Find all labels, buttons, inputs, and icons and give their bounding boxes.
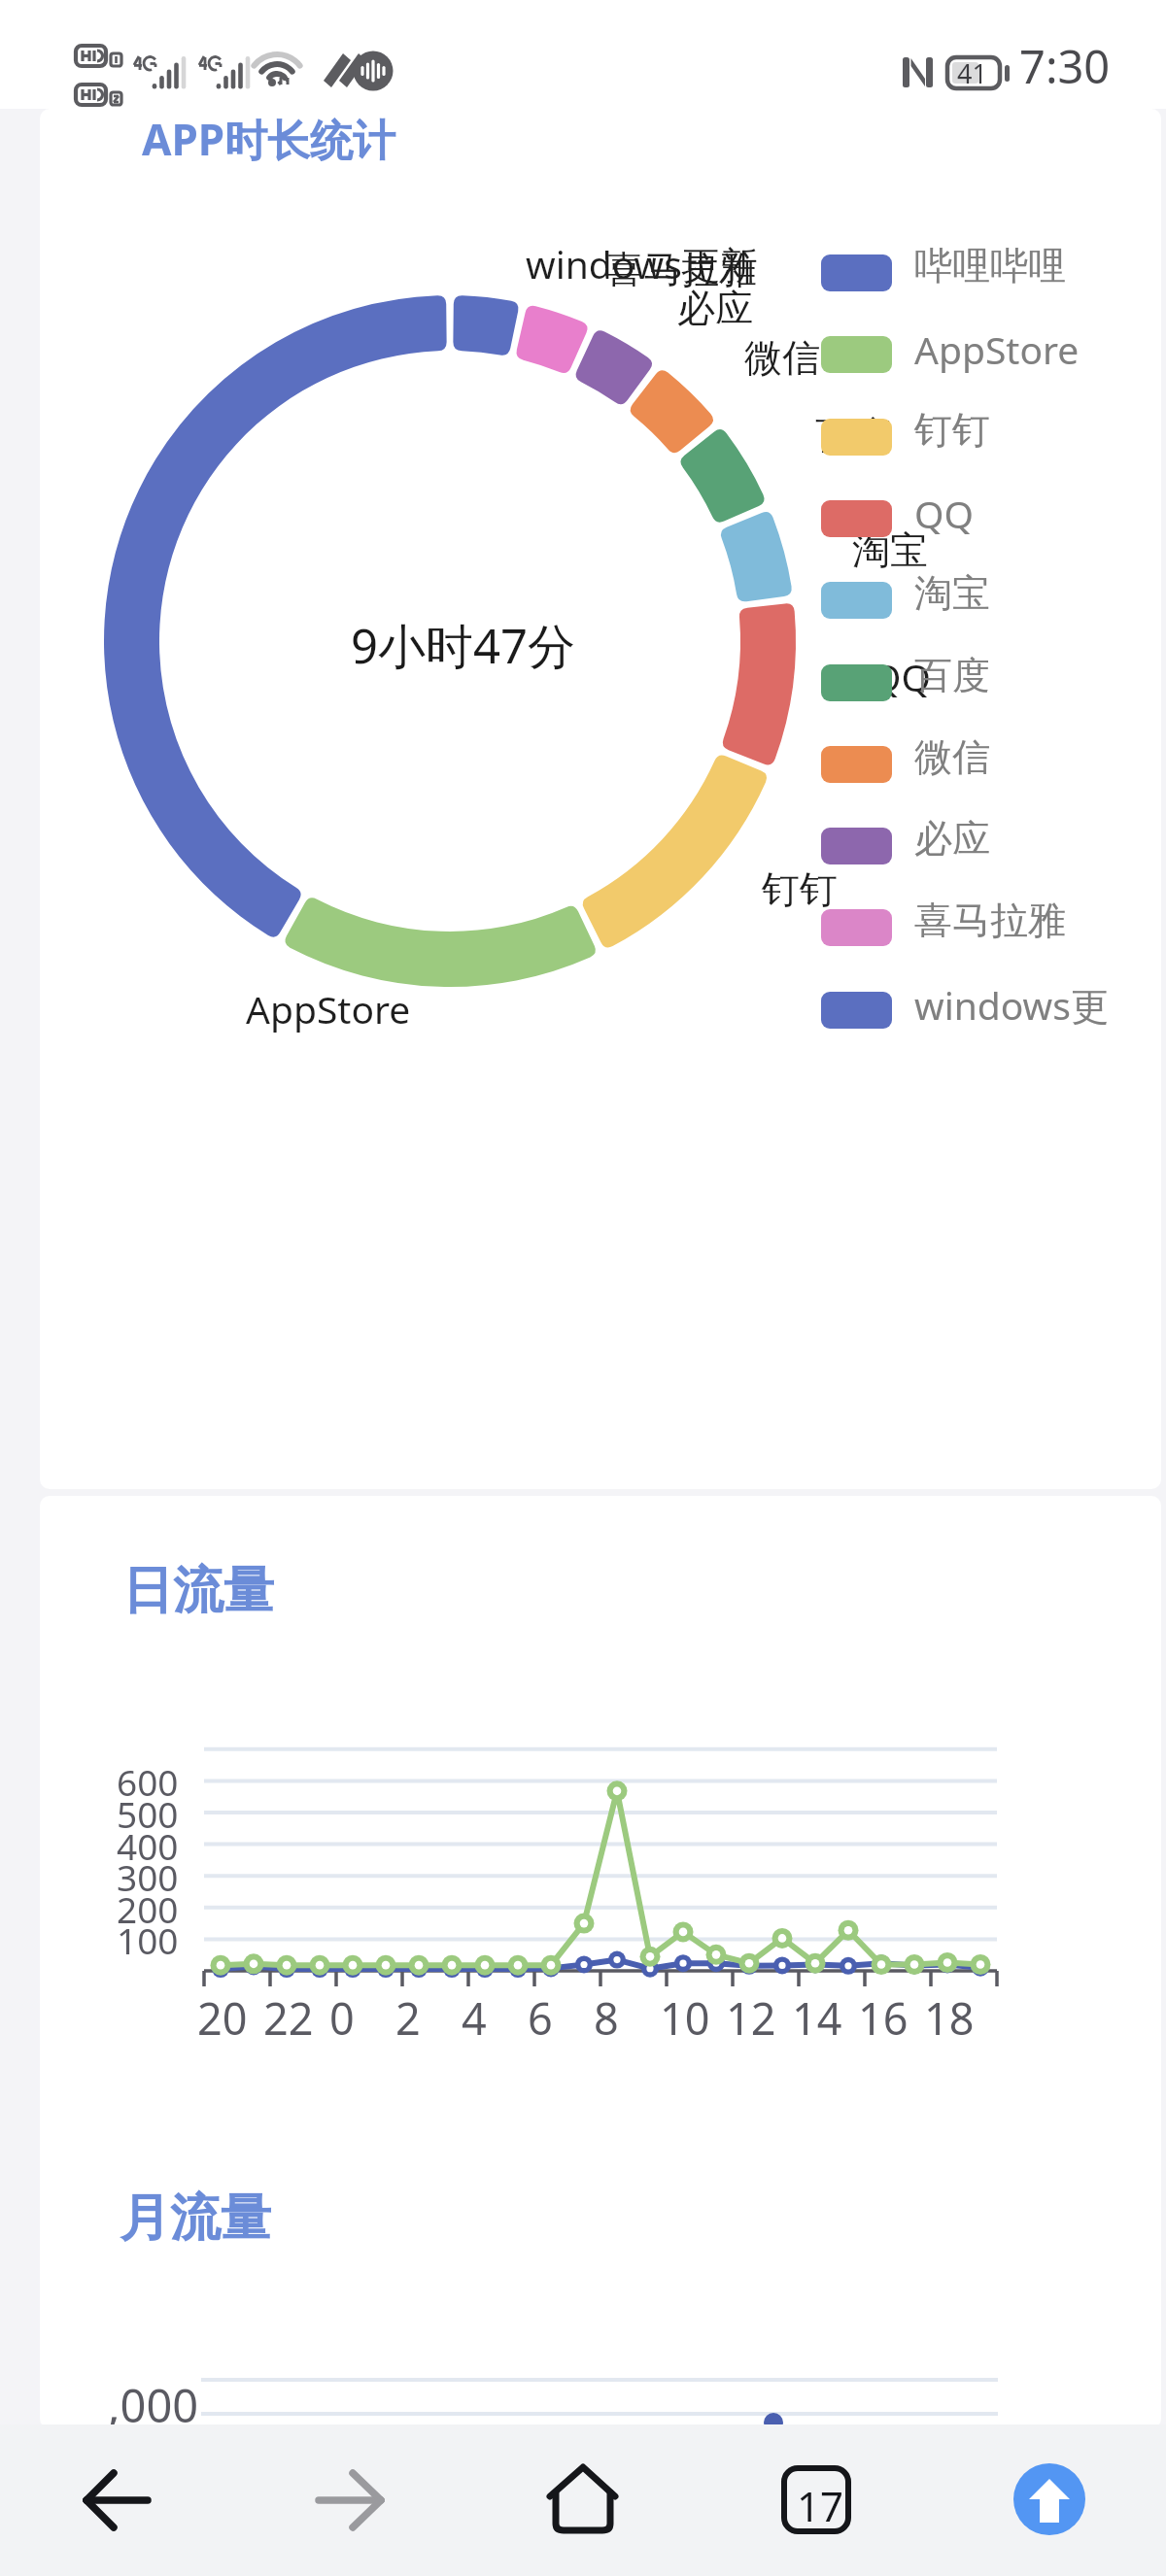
button[interactable]: 必应 <box>821 815 990 863</box>
staticText: AppStore <box>246 983 411 1034</box>
staticText: QQ <box>872 651 931 702</box>
staticText: 淘宝 <box>914 569 990 617</box>
staticText: 哔哩哔哩 <box>914 242 1066 289</box>
staticText: ,000 <box>108 2374 199 2428</box>
staticText: QQ <box>914 488 974 539</box>
staticText: 14 <box>792 1988 842 2048</box>
staticText: APP时长统计 <box>142 110 396 168</box>
button[interactable]: Scroll to top <box>1013 2463 1085 2535</box>
staticText: 淘宝 <box>852 526 928 574</box>
staticText: 6 <box>528 1988 553 2048</box>
staticText: 9小时47分 <box>351 613 576 678</box>
staticText: 必应 <box>677 285 753 332</box>
staticText: windows更新 <box>526 238 758 289</box>
button[interactable]: AppStore <box>821 323 1080 375</box>
staticText: 日流量 <box>122 1559 274 1623</box>
staticText: 0 <box>329 1988 355 2048</box>
staticText: 喜马拉雅 <box>914 897 1066 944</box>
staticText: 百度 <box>914 652 990 699</box>
button[interactable]: Tabs <box>740 2444 892 2557</box>
staticText: 20 <box>197 1988 248 2048</box>
staticText: 10 <box>660 1988 710 2048</box>
button[interactable]: 百度 <box>821 652 990 699</box>
staticText: windows更 <box>914 979 1109 1031</box>
staticText: AppStore <box>914 323 1080 375</box>
staticText: 41 <box>957 55 987 91</box>
staticText: 200 <box>117 1884 179 1933</box>
staticText: 400 <box>117 1821 179 1870</box>
staticText: 300 <box>117 1852 179 1901</box>
staticText: 7:30 <box>1019 35 1111 97</box>
button[interactable]: 淘宝 <box>821 569 990 617</box>
staticText: 8 <box>594 1988 619 2048</box>
button[interactable]: 微信 <box>821 733 990 781</box>
staticText: 12 <box>726 1988 776 2048</box>
button[interactable]: Forward <box>274 2444 426 2557</box>
staticText: 100 <box>117 1915 179 1964</box>
staticText: 喜马拉雅 <box>605 246 757 293</box>
staticText: 微信 <box>914 733 990 781</box>
button[interactable]: Home <box>507 2444 659 2557</box>
staticText: 2 <box>395 1988 421 2048</box>
button[interactable]: Back <box>41 2444 192 2557</box>
staticText: 钉钉 <box>914 406 990 454</box>
button[interactable]: windows更 <box>821 979 1109 1031</box>
staticText: 600 <box>117 1757 179 1806</box>
staticText: 500 <box>117 1789 179 1838</box>
staticText: 必应 <box>914 815 990 863</box>
button[interactable]: 钉钉 <box>821 406 990 454</box>
staticText: 微信 <box>744 334 820 382</box>
staticText: 钉钉 <box>762 865 838 913</box>
staticText: 17 <box>797 2478 844 2533</box>
button[interactable]: 喜马拉雅 <box>821 897 1066 944</box>
staticText: 22 <box>263 1988 314 2048</box>
staticText: 月流量 <box>120 2186 271 2251</box>
button[interactable]: QQ <box>821 488 974 539</box>
staticText: 16 <box>858 1988 909 2048</box>
staticText: 4 <box>462 1988 487 2048</box>
button[interactable]: 哔哩哔哩 <box>821 242 1066 289</box>
staticText: 18 <box>924 1988 975 2048</box>
staticText: 百度 <box>815 412 891 459</box>
